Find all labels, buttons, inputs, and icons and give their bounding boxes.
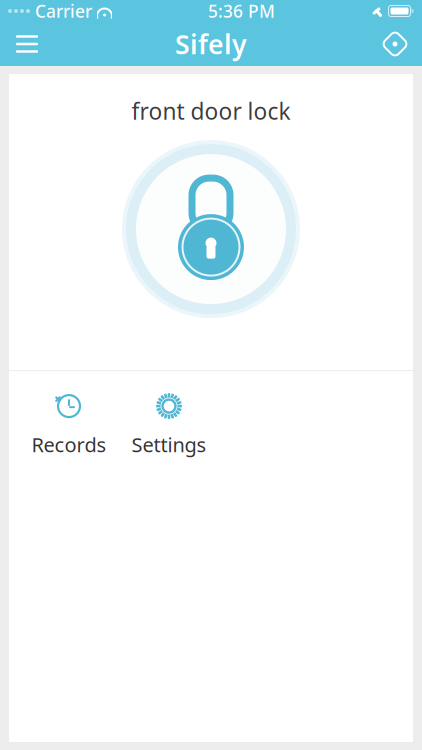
- staticText: 5:36 PM: [208, 0, 275, 22]
- staticText: Settings: [131, 431, 206, 458]
- staticText: Sifely: [175, 26, 247, 62]
- staticText: front door lock: [131, 96, 290, 126]
- staticText: Carrier: [35, 0, 92, 22]
- button[interactable]: Lock or unlock front door lock: [120, 138, 302, 320]
- button[interactable]: Menu: [0, 22, 54, 66]
- button[interactable]: Records: [19, 385, 119, 464]
- button[interactable]: Settings: [119, 385, 219, 464]
- button[interactable]: Scan: [368, 22, 422, 66]
- staticText: Records: [31, 431, 106, 458]
